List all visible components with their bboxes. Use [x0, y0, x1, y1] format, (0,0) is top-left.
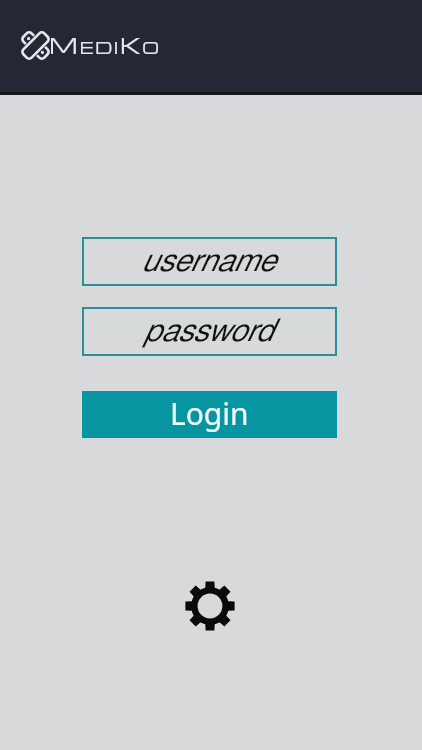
staticText: MEDIKO [49, 30, 161, 60]
staticText: password [143, 316, 273, 347]
button[interactable]: Settings [185, 581, 235, 631]
button[interactable]: Login [82, 391, 337, 438]
button[interactable]: username [82, 237, 337, 286]
button[interactable]: password [82, 307, 337, 356]
staticText: username [141, 246, 275, 277]
staticText: Login [170, 393, 249, 434]
